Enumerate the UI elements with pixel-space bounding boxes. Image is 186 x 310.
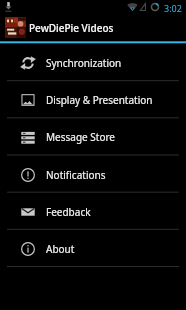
button[interactable]: PewDiePie Videos <box>0 13 186 40</box>
button[interactable]: Feedback <box>0 193 186 230</box>
button[interactable]: Synchronization <box>0 44 186 81</box>
staticText: About <box>46 242 75 256</box>
staticText: 3:02 <box>164 2 182 14</box>
button[interactable]: Display & Presentation <box>0 81 186 118</box>
staticText: Notifications <box>46 168 106 182</box>
staticText: Feedback <box>46 205 91 219</box>
staticText: Display & Presentation <box>46 93 153 107</box>
staticText: PewDiePie Videos <box>29 21 114 35</box>
button[interactable]: Notifications <box>0 156 186 193</box>
button[interactable]: About <box>0 230 186 267</box>
staticText: Message Store <box>46 130 116 144</box>
staticText: Synchronization <box>46 56 122 70</box>
button[interactable]: Message Store <box>0 118 186 155</box>
